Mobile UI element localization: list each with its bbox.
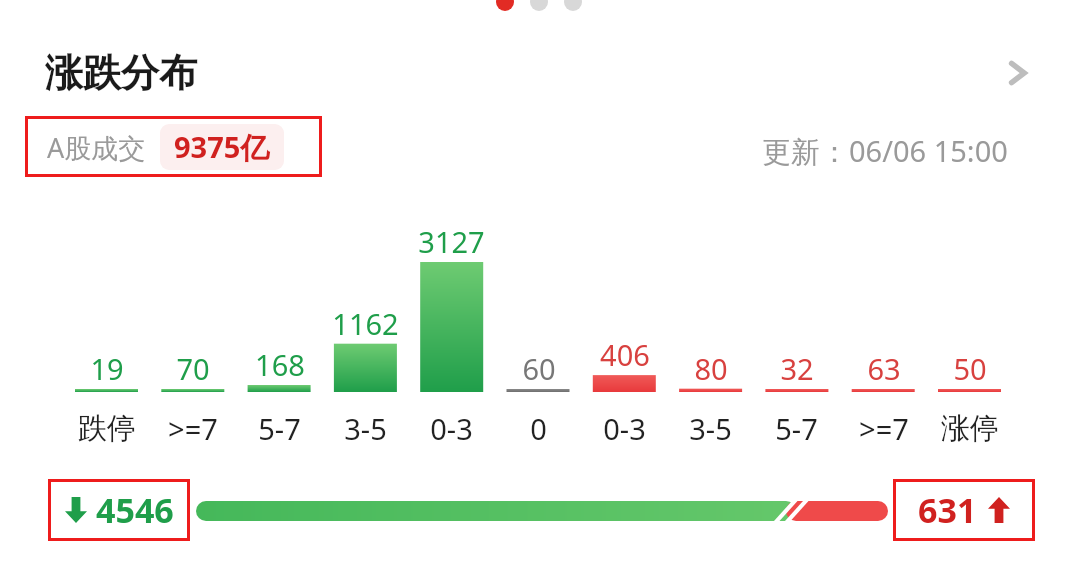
button[interactable]: 1162 [323, 304, 408, 342]
staticText: 5-7 [775, 409, 818, 448]
staticText: 32 [780, 349, 814, 387]
button[interactable]: 50 [927, 349, 1012, 387]
staticText: 1162 [332, 304, 399, 342]
staticText: 63 [867, 349, 901, 387]
staticText: 9375亿 [174, 127, 270, 167]
staticText: 70 [176, 349, 210, 387]
staticText: 0-3 [430, 409, 473, 448]
staticText: 4546 [96, 487, 174, 533]
other: More [1002, 58, 1032, 88]
button[interactable]: 4546 [48, 479, 190, 541]
button[interactable]: 60 [496, 349, 581, 387]
staticText: 3-5 [344, 409, 387, 448]
staticText: 3-5 [689, 409, 732, 448]
button[interactable]: 406 [582, 335, 667, 373]
button[interactable]: 80 [668, 349, 753, 387]
button[interactable]: 3127 [409, 222, 494, 260]
button[interactable]: 168 [237, 345, 322, 383]
staticText: >=7 [168, 409, 218, 448]
staticText: 406 [600, 335, 650, 373]
staticText: 5-7 [258, 409, 301, 448]
staticText: 跌停 [78, 410, 136, 447]
staticText: 3127 [418, 222, 485, 260]
staticText: 60 [522, 349, 556, 387]
staticText: 50 [953, 349, 987, 387]
staticText: 631 [918, 487, 977, 533]
button[interactable]: 19 [64, 349, 149, 387]
staticText: A股成交 [47, 129, 146, 166]
staticText: 19 [90, 349, 124, 387]
button[interactable]: 32 [754, 349, 839, 387]
staticText: 涨跌分布 [45, 49, 197, 97]
button[interactable]: 涨跌分布 [0, 40, 1080, 106]
button[interactable]: A股成交 [25, 116, 322, 177]
staticText: 168 [255, 345, 305, 383]
staticText: 更新：06/06 15:00 [762, 131, 1008, 171]
staticText: 0-3 [603, 409, 646, 448]
staticText: 涨停 [941, 410, 999, 447]
button[interactable]: 70 [150, 349, 235, 387]
staticText: 0 [530, 409, 547, 448]
button[interactable]: 631 [893, 479, 1035, 541]
staticText: >=7 [859, 409, 909, 448]
button[interactable]: 63 [841, 349, 926, 387]
staticText: 80 [694, 349, 728, 387]
